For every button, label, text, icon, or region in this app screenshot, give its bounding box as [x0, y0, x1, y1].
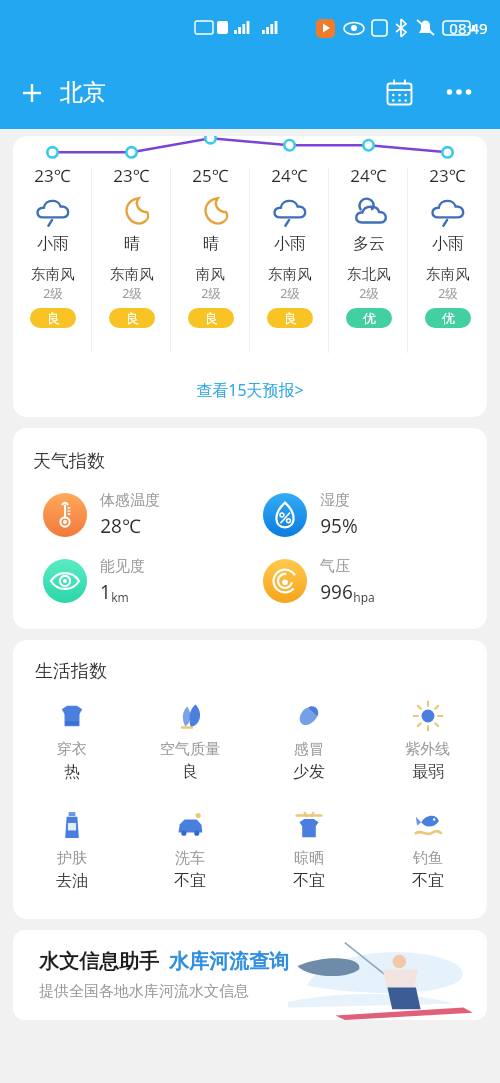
- button[interactable]: 护肤: [13, 802, 131, 897]
- button[interactable]: 湿度: [253, 491, 473, 539]
- button[interactable]: 钓鱼: [368, 802, 487, 897]
- staticText: 天气指数: [33, 450, 105, 473]
- button[interactable]: 北京: [20, 78, 106, 107]
- staticText: 东南风: [426, 265, 470, 283]
- staticText: hpa: [353, 589, 375, 605]
- staticText: 东南风: [110, 265, 154, 283]
- button[interactable]: 晾晒: [249, 802, 368, 897]
- staticText: 良: [126, 310, 139, 326]
- staticText: 多云: [353, 234, 385, 254]
- staticText: 空气质量: [160, 740, 220, 759]
- staticText: 25℃: [192, 164, 229, 187]
- button[interactable]: 23℃: [13, 158, 92, 363]
- button[interactable]: 24℃: [329, 158, 408, 363]
- staticText: 小雨: [37, 234, 69, 254]
- staticText: 东南风: [31, 265, 75, 283]
- staticText: 东南风: [268, 265, 312, 283]
- staticText: 护肤: [57, 849, 87, 868]
- staticText: 热: [64, 762, 80, 782]
- staticText: km: [111, 589, 129, 605]
- staticText: 查看15天预报>: [196, 379, 304, 401]
- button[interactable]: 紫外线: [368, 693, 487, 788]
- staticText: 良: [182, 762, 198, 782]
- staticText: 能见度: [100, 557, 145, 576]
- staticText: 提供全国各地水库河流水文信息: [39, 982, 249, 1001]
- staticText: 湿度: [320, 491, 350, 510]
- button[interactable]: 23℃: [408, 158, 487, 363]
- staticText: 穿衣: [57, 740, 87, 759]
- button[interactable]: 24℃: [250, 158, 329, 363]
- staticText: 北京: [60, 78, 106, 107]
- button[interactable]: 查看15天预报>: [13, 363, 487, 417]
- staticText: 感冒: [294, 740, 324, 759]
- staticText: 晾晒: [294, 849, 324, 868]
- staticText: 紫外线: [405, 740, 450, 759]
- staticText: 良: [205, 310, 218, 326]
- staticText: 2级: [438, 285, 458, 302]
- button[interactable]: 能见度: [33, 557, 253, 605]
- staticText: 优: [442, 310, 455, 326]
- staticText: 气压: [320, 557, 350, 576]
- staticText: 晴: [203, 234, 219, 254]
- staticText: 小雨: [432, 234, 464, 254]
- staticText: 08:49: [449, 18, 488, 38]
- staticText: 最弱: [412, 762, 444, 782]
- staticText: 东北风: [347, 265, 391, 283]
- staticText: 2级: [201, 285, 221, 302]
- button[interactable]: 体感温度: [33, 491, 253, 539]
- staticText: 24℃: [271, 164, 308, 187]
- staticText: 小雨: [274, 234, 306, 254]
- staticText: 晴: [124, 234, 140, 254]
- staticText: 95%: [320, 513, 358, 539]
- staticText: 24℃: [350, 164, 387, 187]
- staticText: 23℃: [113, 164, 150, 187]
- staticText: 良: [284, 310, 297, 326]
- button[interactable]: 空气质量: [131, 693, 249, 788]
- staticText: 水库河流查询: [169, 949, 289, 974]
- staticText: 2级: [280, 285, 300, 302]
- button[interactable]: 穿衣: [13, 693, 131, 788]
- staticText: 1: [100, 579, 111, 605]
- staticText: 2级: [359, 285, 379, 302]
- staticText: 少发: [293, 762, 325, 782]
- button[interactable]: 23℃: [92, 158, 171, 363]
- staticText: 不宜: [412, 871, 444, 891]
- staticText: 2级: [43, 285, 63, 302]
- button[interactable]: 气压: [253, 557, 473, 605]
- staticText: 钓鱼: [413, 849, 443, 868]
- button[interactable]: 25℃: [171, 158, 250, 363]
- staticText: 2级: [122, 285, 142, 302]
- staticText: 不宜: [174, 871, 206, 891]
- button[interactable]: 水文信息助手: [13, 930, 487, 1020]
- staticText: 不宜: [293, 871, 325, 891]
- staticText: 优: [363, 310, 376, 326]
- button[interactable]: More options: [436, 69, 482, 115]
- staticText: 996: [320, 579, 353, 605]
- staticText: 28℃: [100, 513, 141, 539]
- staticText: 23℃: [34, 164, 71, 187]
- staticText: 良: [47, 310, 60, 326]
- staticText: 体感温度: [100, 491, 160, 510]
- button[interactable]: 感冒: [249, 693, 368, 788]
- staticText: 南风: [196, 265, 225, 283]
- staticText: 23℃: [429, 164, 466, 187]
- staticText: 洗车: [175, 849, 205, 868]
- button[interactable]: Calendar: [376, 69, 422, 115]
- button[interactable]: 洗车: [131, 802, 249, 897]
- staticText: 去油: [56, 871, 88, 891]
- staticText: 生活指数: [35, 660, 107, 683]
- staticText: 水文信息助手: [39, 949, 159, 974]
